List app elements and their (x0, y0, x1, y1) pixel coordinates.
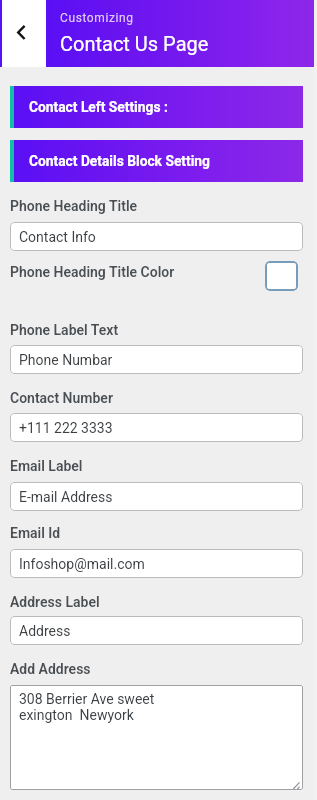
button[interactable]: Infoshop@mail.com (10, 549, 303, 578)
button[interactable]: Contact Left Settings : (10, 86, 303, 128)
staticText: Phone Numbar (19, 352, 113, 368)
button[interactable]: Contact Info (10, 222, 303, 251)
button[interactable]: Contact Details Block Setting (10, 140, 303, 182)
button[interactable]: +111 222 3333 (10, 413, 303, 442)
staticText: Phone Heading Title Color (10, 264, 175, 280)
staticText: Address Label (10, 594, 100, 610)
staticText: Phone Label Text (10, 322, 119, 338)
staticText: Contact Us Page (60, 32, 209, 55)
staticText: Customizing (60, 11, 134, 25)
button[interactable]: Phone Numbar (10, 345, 303, 374)
button[interactable]: Back (2, 0, 46, 67)
staticText: exington Newyork (19, 707, 134, 723)
staticText: Contact Left Settings : (29, 99, 168, 115)
staticText: E-mail Address (19, 489, 113, 505)
staticText: Email Id (10, 525, 61, 541)
button[interactable]: Address (10, 616, 303, 645)
button[interactable]: Choose colour (265, 261, 298, 291)
staticText: Contact Details Block Setting (29, 153, 210, 169)
staticText: Address (19, 623, 71, 639)
staticText: 308 Berrier Ave sweet (19, 691, 155, 707)
staticText: Contact Info (19, 229, 96, 245)
staticText: Phone Heading Title (10, 198, 138, 214)
staticText: Email Label (10, 458, 83, 474)
button[interactable]: E-mail Address (10, 482, 303, 511)
staticText: Infoshop@mail.com (19, 556, 145, 572)
staticText: Contact Number (10, 390, 113, 406)
staticText: +111 222 3333 (19, 420, 113, 436)
staticText: Add Address (10, 661, 91, 677)
button[interactable]: 308 Berrier Ave sweet (10, 685, 303, 790)
